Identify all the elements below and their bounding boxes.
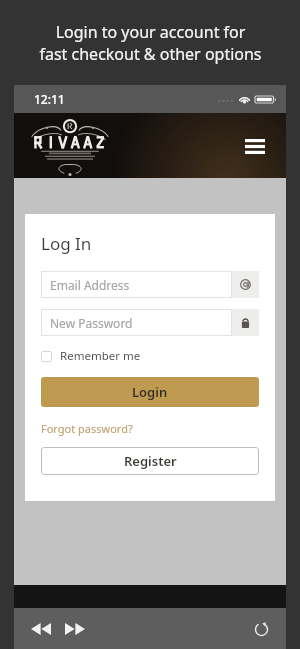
staticText: Remember me (60, 348, 141, 364)
button[interactable]: Email Address (41, 271, 259, 298)
button[interactable]: Register (41, 447, 259, 475)
staticText: Register (124, 452, 177, 470)
button[interactable]: New Password (41, 309, 259, 336)
staticText: Email Address (50, 277, 130, 293)
button[interactable]: Rewind (28, 616, 54, 642)
button[interactable]: Login (41, 377, 259, 407)
button[interactable]: Remember me (41, 348, 141, 364)
button[interactable]: Open menu (238, 129, 272, 163)
staticText: Login to your account for fast checkout … (39, 21, 262, 65)
staticText: Login (132, 383, 168, 401)
staticText: Log In (41, 232, 92, 255)
button[interactable]: Reload (248, 616, 274, 642)
staticText: Forgot password? (41, 421, 133, 436)
button[interactable]: Forgot password? (41, 421, 133, 436)
staticText: 12:11 (34, 91, 65, 107)
staticText: New Password (50, 315, 133, 331)
button[interactable]: Fast forward (62, 616, 88, 642)
